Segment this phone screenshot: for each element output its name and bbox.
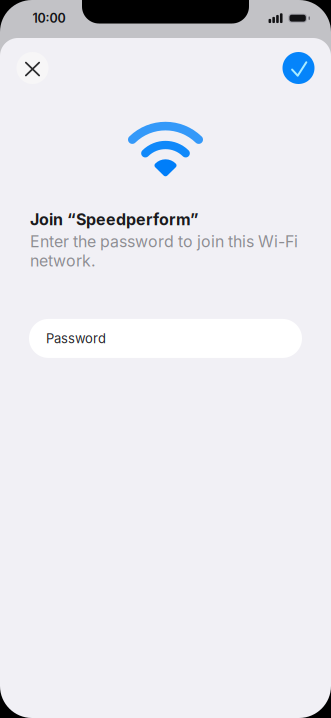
staticText: Enter the password to join this Wi-Fi ne… xyxy=(30,232,298,270)
staticText: Join “Speedperform” xyxy=(30,210,199,229)
staticText: Password xyxy=(46,331,106,346)
button[interactable]: Close xyxy=(16,52,48,84)
staticText: 10:00 xyxy=(32,11,65,26)
button[interactable]: Password xyxy=(29,319,302,358)
button[interactable]: Join network xyxy=(282,52,314,84)
